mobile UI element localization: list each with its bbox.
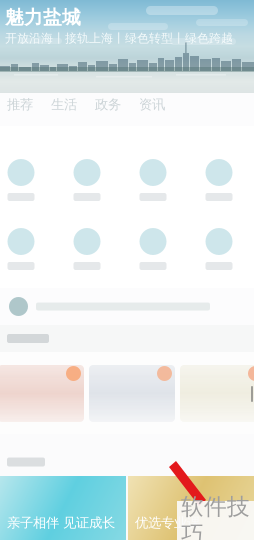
button[interactable]: Service bbox=[120, 159, 186, 201]
button[interactable]: 亲子相伴 见证成长 bbox=[0, 476, 126, 540]
button[interactable]: 优选专业课 bbox=[128, 476, 254, 540]
staticText: 推荐 bbox=[7, 96, 33, 113]
button[interactable]: Service bbox=[0, 228, 54, 270]
button[interactable]: 生活 bbox=[51, 96, 77, 113]
button[interactable]: Service bbox=[186, 228, 252, 270]
button[interactable]: 推荐 bbox=[7, 96, 33, 113]
button[interactable]: 资讯 bbox=[139, 96, 165, 113]
button[interactable]: Service bbox=[120, 228, 186, 270]
staticText: 亲子相伴 见证成长 bbox=[7, 515, 115, 531]
button[interactable] bbox=[0, 297, 254, 316]
button[interactable]: Service bbox=[54, 159, 120, 201]
staticText: 魅力盐城 bbox=[5, 6, 81, 29]
staticText: 优选专业课 bbox=[135, 515, 200, 531]
button[interactable]: Service bbox=[0, 159, 54, 201]
button[interactable]: Feature card bbox=[0, 365, 84, 422]
button[interactable]: 政务 bbox=[95, 96, 121, 113]
staticText: 政务 bbox=[95, 96, 121, 113]
button[interactable]: Feature card bbox=[89, 365, 175, 422]
button[interactable]: Service bbox=[186, 159, 252, 201]
staticText: 生活 bbox=[51, 96, 77, 113]
staticText: 开放沿海丨接轨上海丨绿色转型丨绿色跨越 bbox=[5, 31, 233, 46]
button[interactable]: Service bbox=[54, 228, 120, 270]
button[interactable]: Feature card bbox=[180, 365, 254, 422]
staticText: 软件技巧 bbox=[181, 493, 250, 540]
staticText: 资讯 bbox=[139, 96, 165, 113]
